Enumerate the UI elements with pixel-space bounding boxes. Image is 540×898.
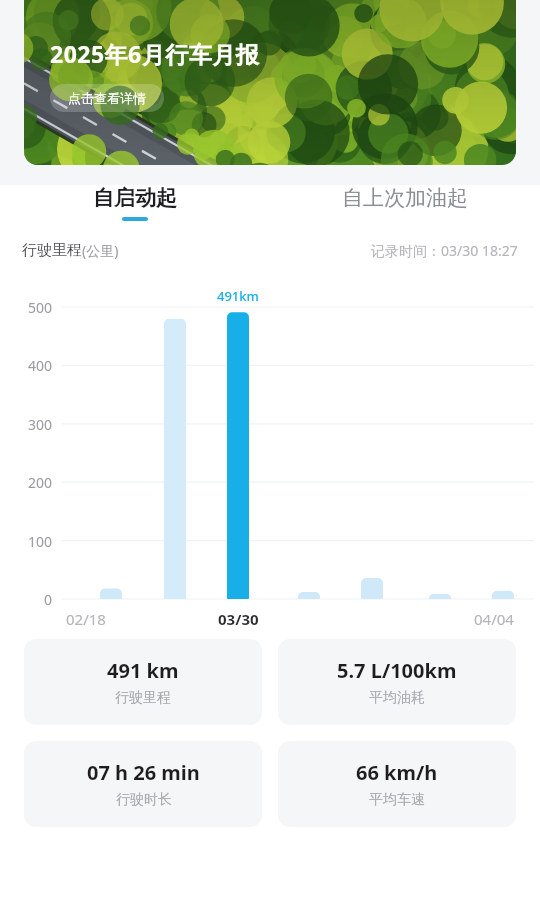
staticText: 100 (27, 532, 52, 551)
button[interactable]: 66 km/h (278, 741, 516, 827)
staticText: 66 km/h (356, 759, 438, 786)
staticText: 平均油耗 (369, 689, 425, 707)
button[interactable]: 491 km (24, 639, 262, 725)
staticText: 平均车速 (369, 791, 425, 809)
staticText: 500 (27, 298, 52, 317)
staticText: 02/18 (66, 609, 106, 629)
button[interactable]: 点击查看详情 (50, 84, 164, 112)
staticText: (公里) (82, 241, 119, 260)
staticText: 自启动起 (93, 185, 177, 211)
staticText: 0 (43, 590, 52, 609)
staticText: 03/30 (218, 609, 259, 629)
staticText: 记录时间：03/30 18:27 (371, 241, 518, 260)
button[interactable]: 2025年6月行车月报 (24, 0, 516, 165)
button[interactable]: 5.7 L/100km (278, 639, 516, 725)
staticText: 2025年6月行车月报 (50, 38, 260, 69)
staticText: 行驶里程 (115, 689, 171, 707)
staticText: 200 (27, 473, 52, 492)
staticText: 行驶时长 (116, 791, 172, 809)
staticText: 自上次加油起 (342, 185, 468, 211)
staticText: 5.7 L/100km (337, 657, 457, 684)
staticText: 400 (27, 356, 52, 375)
button[interactable]: 07 h 26 min (24, 741, 262, 827)
button[interactable]: 自启动起 (0, 185, 270, 221)
staticText: 点击查看详情 (68, 90, 146, 106)
staticText: 07 h 26 min (87, 759, 200, 786)
button[interactable]: 自上次加油起 (270, 185, 540, 221)
staticText: 行驶里程 (22, 241, 82, 260)
staticText: 491 km (107, 657, 179, 684)
staticText: 04/04 (474, 609, 514, 629)
staticText: 491km (217, 287, 259, 305)
staticText: 300 (27, 415, 52, 434)
